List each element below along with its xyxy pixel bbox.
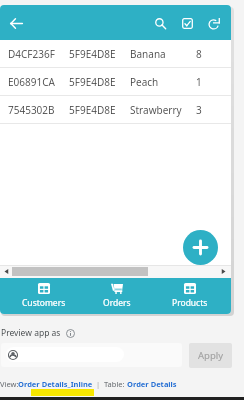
other: Scroll right — [221, 269, 226, 274]
button[interactable]: D4CF236F — [0, 40, 231, 67]
staticText: 5F9E4D8E — [69, 75, 116, 89]
button[interactable]: Info — [65, 328, 75, 338]
staticText: | — [96, 379, 101, 389]
staticText: Peach — [130, 75, 159, 89]
button[interactable]: Order Details_Inline — [18, 379, 93, 389]
button[interactable]: Orders — [80, 278, 153, 314]
staticText: Products — [172, 297, 208, 309]
button[interactable]: E06891CA — [0, 68, 231, 95]
staticText: 5F9E4D8E — [69, 103, 116, 117]
button[interactable]: Refresh — [203, 13, 224, 34]
button[interactable]: Search — [150, 13, 171, 34]
staticText: Strawberry — [130, 103, 182, 117]
button[interactable]: Select all — [177, 13, 198, 34]
button[interactable]: Back — [5, 12, 27, 34]
button[interactable]: Customers — [7, 278, 80, 314]
staticText: Table: — [104, 379, 125, 389]
staticText: 7545302B — [8, 103, 55, 117]
staticText: 5F9E4D8E — [69, 47, 116, 61]
staticText: Orders — [103, 297, 131, 309]
staticText: Preview app as — [1, 327, 61, 339]
button[interactable]: Add — [183, 230, 218, 265]
staticText: 8 — [196, 47, 202, 61]
button[interactable] — [1, 343, 182, 367]
button[interactable]: Products — [153, 278, 226, 314]
staticText: Customers — [22, 297, 66, 309]
staticText: 3 — [196, 103, 202, 117]
button[interactable]: Order Details — [127, 379, 177, 389]
staticText: 1 — [196, 75, 202, 89]
staticText: View: — [0, 379, 19, 389]
staticText: Apply — [198, 349, 224, 362]
other: Scroll left — [4, 269, 9, 274]
button[interactable]: 7545302B — [0, 96, 231, 123]
staticText: Banana — [130, 47, 166, 61]
staticText: E06891CA — [8, 75, 55, 89]
staticText: D4CF236F — [8, 47, 55, 61]
button[interactable]: Apply — [189, 343, 232, 368]
